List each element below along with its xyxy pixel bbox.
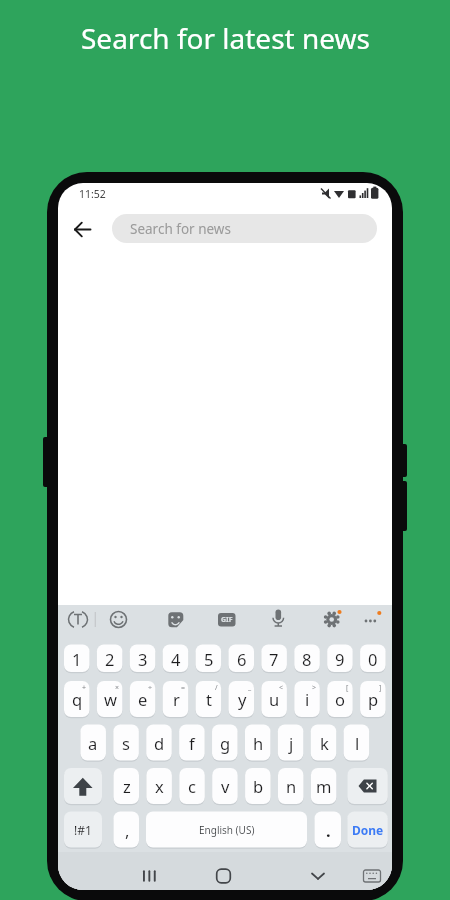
staticText: z [123,775,131,797]
staticText: 3 [138,648,148,670]
staticText: 11:52 [79,187,106,201]
staticText: 6 [237,648,247,670]
staticText: x [155,775,164,797]
staticText: y [238,688,247,710]
staticText: m [316,775,332,797]
staticText: u [269,688,280,710]
staticText: a [88,732,98,754]
staticText: h [253,732,264,754]
staticText: v [221,775,230,797]
staticText: t [206,688,212,710]
staticText: j [289,732,294,754]
staticText: Search for latest news [81,19,370,57]
staticText: / [215,683,218,692]
staticText: n [286,775,297,797]
staticText: 1 [72,648,82,670]
staticText: Done [352,822,384,838]
staticText: _ [248,683,252,692]
staticText: o [335,688,345,710]
staticText: ÷ [148,683,153,692]
staticText: e [138,688,148,710]
staticText: . [326,819,331,841]
staticText: c [188,775,196,797]
staticText: , [125,819,130,841]
staticText: GIF [221,615,233,625]
staticText: w [104,688,117,710]
staticText: r [173,688,180,710]
staticText: k [320,732,329,754]
staticText: 8 [302,648,312,670]
staticText: ] [379,683,382,692]
staticText: p [368,688,379,710]
staticText: 9 [335,648,345,670]
staticText: !#1 [74,822,92,838]
staticText: d [154,732,165,754]
staticText: > [312,683,317,692]
staticText: 0 [368,648,378,670]
staticText: + [82,683,87,692]
staticText: × [115,683,120,692]
staticText: 4 [171,648,181,670]
staticText: [ [346,683,349,692]
staticText: b [253,775,264,797]
staticText: s [122,732,130,754]
staticText: 5 [204,648,214,670]
staticText: f [189,732,195,754]
staticText: q [72,688,83,710]
staticText: g [220,732,231,754]
staticText: Search for news [130,220,231,238]
staticText: 7 [269,648,279,670]
staticText: < [279,683,284,692]
staticText: English (US) [199,823,255,837]
staticText: i [305,688,310,710]
staticText: = [181,683,186,692]
staticText: 2 [105,648,115,670]
staticText: l [355,732,360,754]
